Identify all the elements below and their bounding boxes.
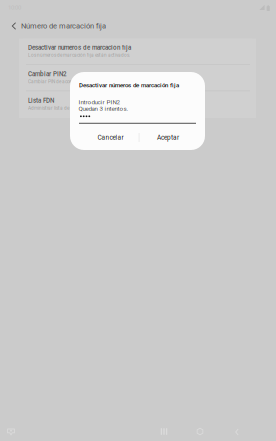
button[interactable]: Recent apps <box>156 424 172 438</box>
staticText: Quedan 3 intentos. <box>79 105 129 112</box>
staticText: 10:00 <box>8 4 21 11</box>
button[interactable]: Home <box>192 424 208 438</box>
button[interactable]: Cancelar <box>82 130 138 146</box>
staticText: Desactivar números de marcación fija <box>28 44 131 51</box>
button[interactable]: Lista FDN <box>19 91 256 118</box>
staticText: Desactivar números de marcación fija <box>79 82 179 89</box>
button[interactable]: Hide keyboard <box>3 425 19 439</box>
button[interactable]: Cambiar PIN2 <box>19 65 256 91</box>
button[interactable]: Back <box>7 18 21 34</box>
staticText: Cambiar PIN2 <box>28 70 67 78</box>
staticText: Cambiar PIN de acceso <box>28 79 76 84</box>
button[interactable]: Aceptar <box>140 130 196 146</box>
staticText: Aceptar <box>157 134 179 141</box>
staticText: Introducir PIN2 <box>79 99 120 106</box>
staticText: Los números de marcación fija están acti… <box>28 52 130 58</box>
staticText: Cancelar <box>97 134 123 141</box>
button[interactable]: Desactivar números de marcación fija <box>19 38 256 65</box>
staticText: Número de marcación fija <box>21 22 106 30</box>
staticText: Administrar lista de contactos <box>28 105 91 111</box>
staticText: Lista FDN <box>28 97 54 104</box>
